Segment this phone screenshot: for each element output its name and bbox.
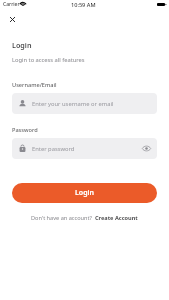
button[interactable]: Close	[4, 11, 20, 27]
staticText: Login	[12, 40, 32, 50]
button[interactable]: Login	[12, 183, 157, 203]
staticText: Username/Email	[12, 81, 57, 89]
staticText: Password	[12, 126, 38, 134]
staticText: Enter your username or email	[32, 100, 114, 108]
button[interactable]: Enter your username or email	[12, 93, 157, 114]
staticText: Enter password	[32, 145, 75, 153]
button[interactable]: Create Account	[95, 214, 138, 222]
staticText: 10:59 AM	[71, 1, 96, 9]
button[interactable]: Enter password	[12, 138, 157, 159]
staticText: Carrier	[3, 1, 20, 8]
staticText: Don't have an account?	[31, 214, 92, 222]
staticText: Login	[75, 188, 94, 198]
staticText: Login to access all features	[12, 56, 85, 64]
staticText: Create Account	[95, 214, 138, 222]
button[interactable]: Show password	[142, 145, 151, 152]
